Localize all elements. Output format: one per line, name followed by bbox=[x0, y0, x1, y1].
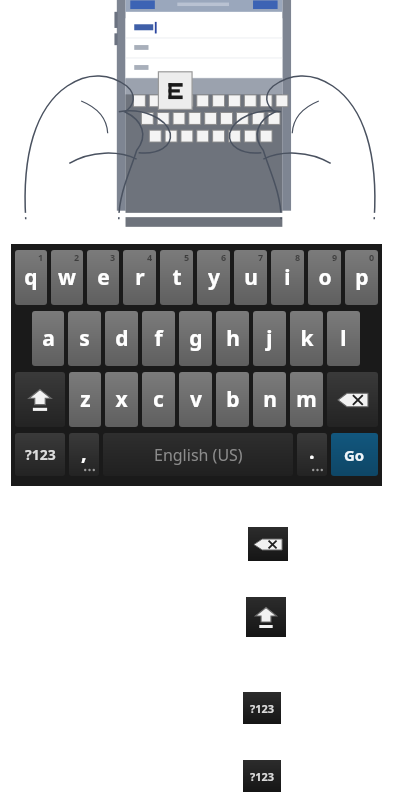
button[interactable]: d bbox=[105, 311, 138, 366]
button[interactable]: h bbox=[216, 311, 249, 366]
button[interactable]: m bbox=[290, 372, 323, 427]
button[interactable]: Shift bbox=[15, 372, 65, 427]
staticText: h bbox=[226, 324, 240, 353]
button[interactable]: i bbox=[271, 250, 304, 305]
staticText: z bbox=[80, 385, 91, 414]
staticText: English (US) bbox=[154, 444, 243, 466]
button[interactable]: Delete bbox=[248, 527, 288, 561]
button[interactable]: f bbox=[142, 311, 175, 366]
button[interactable]: l bbox=[327, 311, 360, 366]
staticText: t bbox=[172, 263, 182, 292]
button[interactable]: c bbox=[142, 372, 175, 427]
button[interactable]: y bbox=[197, 250, 230, 305]
staticText: 1 bbox=[38, 251, 44, 263]
button[interactable]: Shift bbox=[246, 597, 286, 637]
staticText: q bbox=[24, 263, 38, 292]
staticText: w bbox=[58, 263, 76, 292]
staticText: , bbox=[81, 439, 87, 466]
button[interactable]: Go bbox=[331, 433, 378, 476]
button[interactable]: k bbox=[290, 311, 323, 366]
button[interactable]: j bbox=[253, 311, 286, 366]
button[interactable]: Comma bbox=[69, 433, 99, 476]
button[interactable]: ?123 bbox=[243, 760, 281, 792]
staticText: Go bbox=[344, 445, 365, 465]
staticText: b bbox=[226, 385, 240, 414]
button[interactable]: ?123 bbox=[15, 433, 65, 476]
staticText: 8 bbox=[295, 251, 301, 263]
staticText: s bbox=[79, 324, 90, 353]
staticText: 6 bbox=[221, 251, 227, 263]
button[interactable]: w bbox=[51, 250, 83, 305]
staticText: 7 bbox=[258, 251, 264, 263]
button[interactable]: a bbox=[32, 311, 64, 366]
button[interactable]: o bbox=[308, 250, 341, 305]
button[interactable]: g bbox=[179, 311, 212, 366]
staticText: u bbox=[244, 263, 258, 292]
staticText: . bbox=[309, 438, 315, 465]
staticText: ?123 bbox=[25, 445, 56, 464]
button[interactable]: e bbox=[87, 250, 119, 305]
staticText: l bbox=[340, 324, 347, 353]
staticText: o bbox=[318, 263, 332, 292]
button[interactable]: Period bbox=[297, 433, 327, 476]
button[interactable]: r bbox=[123, 250, 156, 305]
staticText: ?123 bbox=[250, 701, 275, 716]
staticText: 0 bbox=[369, 251, 375, 263]
button[interactable]: z bbox=[69, 372, 101, 427]
staticText: 2 bbox=[74, 251, 80, 263]
staticText: 5 bbox=[184, 251, 190, 263]
staticText: f bbox=[154, 324, 163, 353]
button[interactable]: p bbox=[345, 250, 378, 305]
button[interactable]: n bbox=[253, 372, 286, 427]
button[interactable]: u bbox=[234, 250, 267, 305]
staticText: e bbox=[97, 263, 110, 292]
staticText: x bbox=[115, 385, 128, 414]
button[interactable]: q bbox=[15, 250, 47, 305]
staticText: g bbox=[189, 324, 203, 353]
button[interactable]: v bbox=[179, 372, 212, 427]
staticText: 9 bbox=[332, 251, 338, 263]
button[interactable]: s bbox=[68, 311, 101, 366]
button[interactable]: ?123 bbox=[243, 692, 281, 724]
staticText: n bbox=[263, 385, 277, 414]
staticText: c bbox=[153, 385, 164, 414]
staticText: a bbox=[42, 324, 55, 353]
button[interactable]: b bbox=[216, 372, 249, 427]
staticText: p bbox=[355, 263, 369, 292]
staticText: d bbox=[115, 324, 129, 353]
staticText: 3 bbox=[110, 251, 116, 263]
staticText: k bbox=[300, 324, 314, 353]
staticText: 4 bbox=[147, 251, 153, 263]
staticText: v bbox=[190, 385, 202, 414]
staticText: m bbox=[296, 385, 317, 414]
staticText: y bbox=[208, 263, 220, 292]
staticText: r bbox=[135, 263, 145, 292]
staticText: j bbox=[266, 324, 273, 353]
staticText: i bbox=[284, 263, 291, 292]
button[interactable]: Delete bbox=[327, 372, 378, 427]
staticText: ?123 bbox=[250, 769, 275, 784]
button[interactable]: English (US) bbox=[103, 433, 293, 476]
button[interactable]: x bbox=[105, 372, 138, 427]
button[interactable]: t bbox=[160, 250, 193, 305]
